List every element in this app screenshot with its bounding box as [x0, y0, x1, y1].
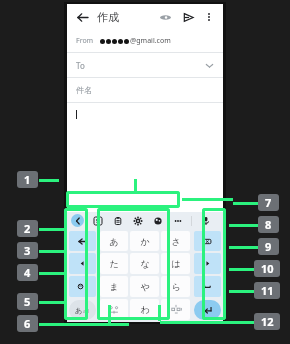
- staticText: は: [171, 258, 181, 269]
- button[interactable]: Backspace: [194, 231, 221, 251]
- staticText: 8: [265, 217, 272, 232]
- button[interactable]: Punctuation: [161, 299, 190, 320]
- staticText: To: [76, 60, 85, 71]
- button[interactable]: [67, 103, 223, 212]
- button[interactable]: Stickers: [91, 214, 104, 227]
- staticText: 10: [261, 261, 274, 276]
- staticText: あ: [75, 306, 83, 315]
- staticText: 5: [24, 294, 31, 309]
- staticText: @gmail.com: [130, 36, 171, 46]
- button[interactable]: From: [67, 30, 223, 52]
- staticText: な: [140, 258, 150, 269]
- staticText: a1: [83, 307, 90, 315]
- button[interactable]: た: [100, 253, 128, 274]
- staticText: 作成: [97, 10, 119, 24]
- button[interactable]: か: [130, 231, 159, 251]
- staticText: さ: [171, 236, 181, 247]
- staticText: た: [109, 258, 119, 269]
- staticText: 件名: [76, 85, 92, 95]
- button[interactable]: Space: [194, 276, 221, 297]
- button[interactable]: Settings: [131, 214, 144, 227]
- button[interactable]: Themes: [151, 214, 164, 227]
- button[interactable]: や: [130, 276, 159, 297]
- button[interactable]: More options: [201, 9, 217, 25]
- staticText: や: [140, 281, 150, 292]
- button[interactable]: さ: [161, 231, 190, 251]
- button[interactable]: Clipboard: [111, 214, 124, 227]
- button[interactable]: Small kana / dakuten: [100, 299, 128, 320]
- button[interactable]: Send: [179, 8, 197, 26]
- staticText: 11: [261, 283, 274, 298]
- staticText: ら: [171, 281, 181, 292]
- staticText: あ: [109, 236, 119, 247]
- staticText: 2: [24, 221, 31, 236]
- button[interactable]: は: [161, 253, 190, 274]
- button[interactable]: Attach: [156, 8, 174, 26]
- button[interactable]: あ: [100, 231, 128, 251]
- button[interactable]: わ: [130, 299, 159, 320]
- button[interactable]: Enter: [194, 300, 221, 320]
- button[interactable]: あ: [69, 300, 96, 320]
- button[interactable]: Cursor right: [194, 253, 221, 274]
- button[interactable]: Cursor left: [69, 253, 96, 274]
- button[interactable]: Back: [73, 8, 91, 26]
- staticText: 3: [24, 243, 31, 258]
- staticText: 12: [261, 314, 274, 329]
- button[interactable]: ま: [100, 276, 128, 297]
- button[interactable]: More: [171, 214, 184, 227]
- button[interactable]: To: [67, 53, 223, 77]
- staticText: 9: [265, 239, 272, 254]
- staticText: 6: [24, 316, 31, 331]
- button[interactable]: Voice input: [199, 214, 212, 227]
- staticText: ま: [109, 281, 119, 292]
- staticText: From: [76, 36, 94, 46]
- staticText: わ: [140, 304, 150, 315]
- button[interactable]: Expand toolbar: [71, 214, 84, 227]
- staticText: 7: [265, 195, 272, 210]
- staticText: か: [140, 236, 150, 247]
- button[interactable]: ら: [161, 276, 190, 297]
- button[interactable]: な: [130, 253, 159, 274]
- button[interactable]: Undo: [69, 231, 96, 251]
- button[interactable]: Emoji and symbols: [69, 276, 96, 297]
- staticText: 4: [24, 265, 31, 280]
- staticText: 1: [24, 172, 31, 187]
- button[interactable]: 件名: [67, 78, 223, 102]
